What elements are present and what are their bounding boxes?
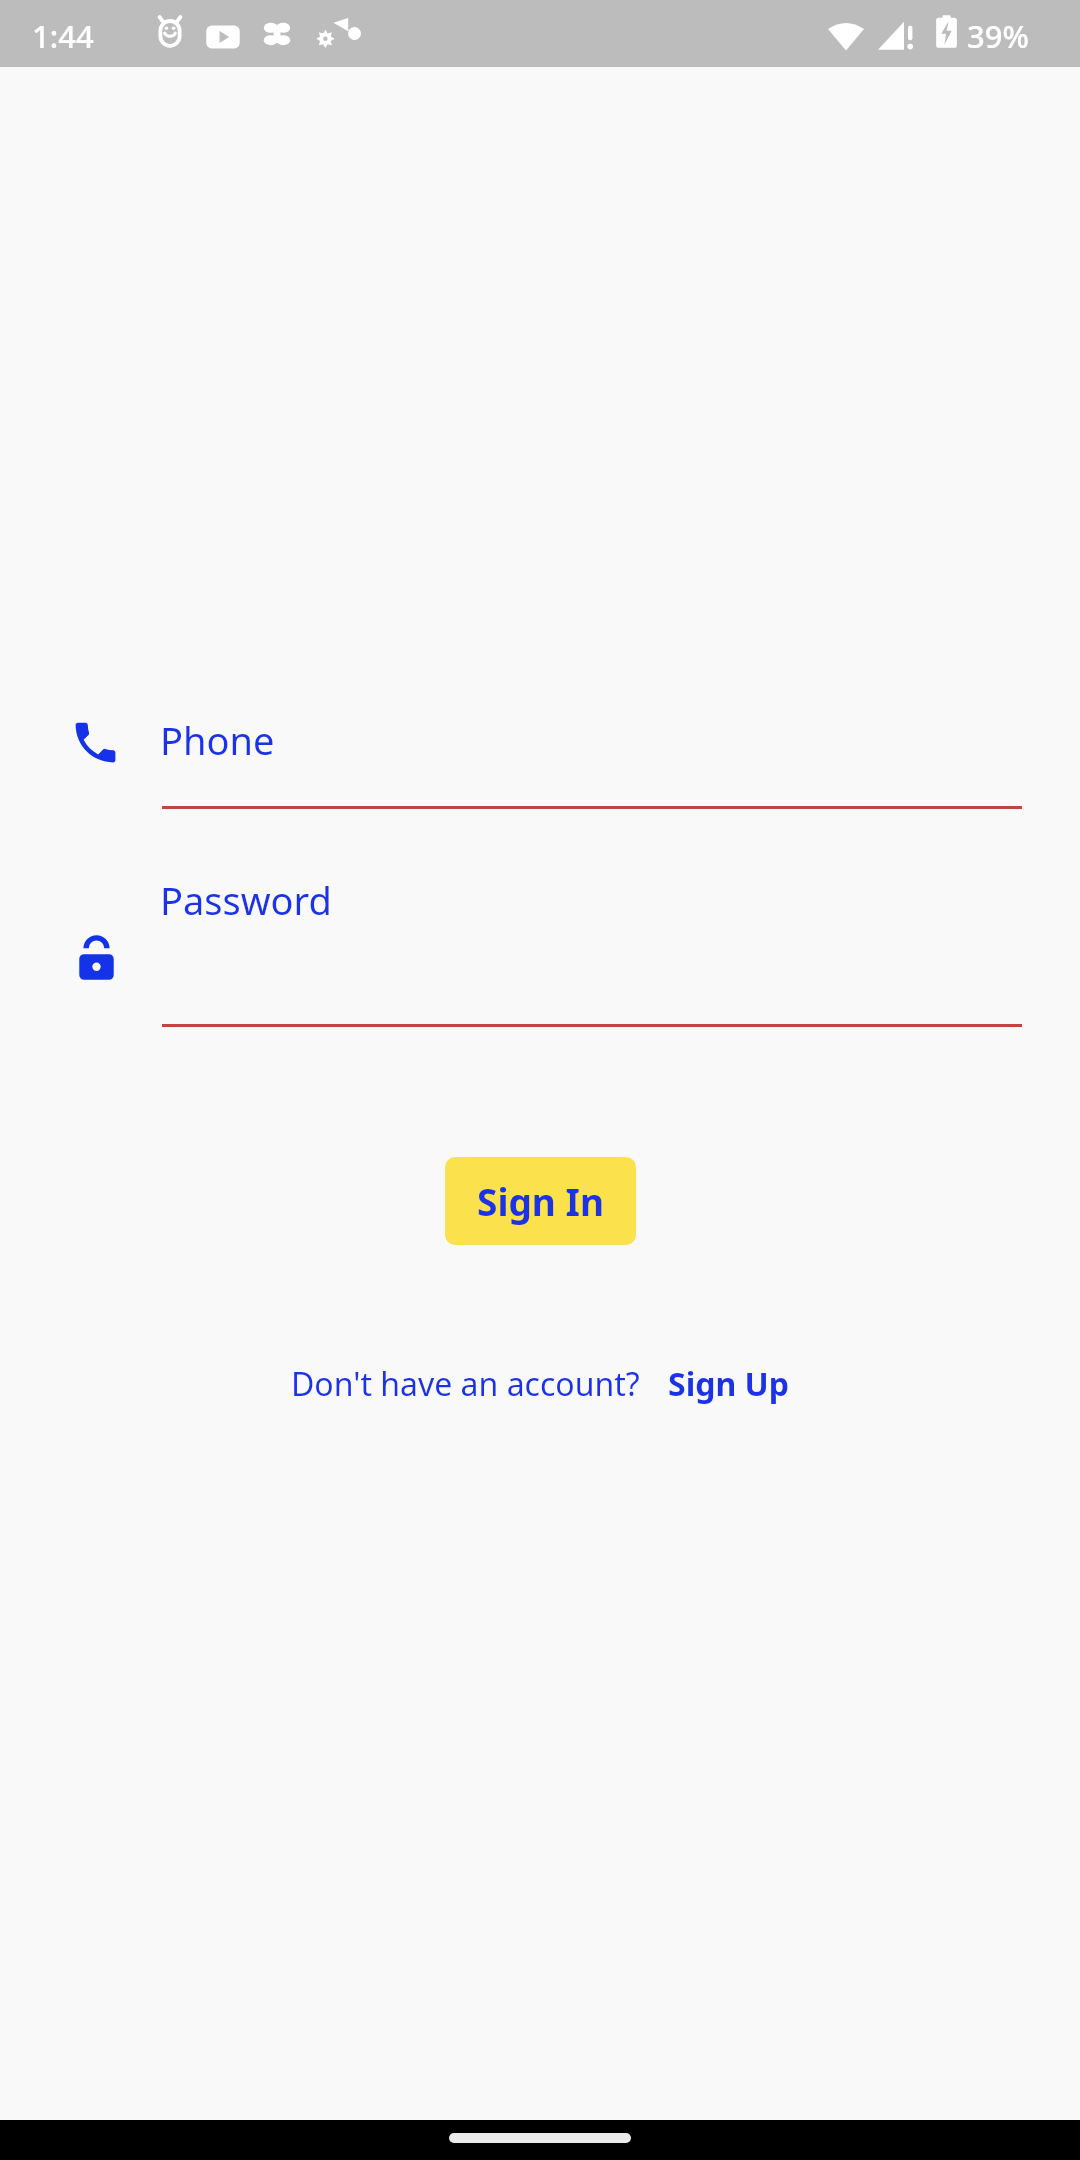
staticText: 39% (967, 15, 1029, 57)
staticText: 1:44 (32, 15, 94, 57)
button[interactable]: Password (160, 874, 332, 926)
staticText: Sign Up (668, 1362, 789, 1406)
staticText: Don't have an account? (291, 1362, 640, 1406)
other: Password (70, 933, 123, 986)
button[interactable]: Phone (160, 714, 275, 766)
button[interactable]: Sign Up (668, 1362, 789, 1406)
other: Phone (69, 716, 122, 769)
staticText: Sign In (477, 1176, 604, 1226)
button[interactable]: Sign In (445, 1157, 636, 1245)
